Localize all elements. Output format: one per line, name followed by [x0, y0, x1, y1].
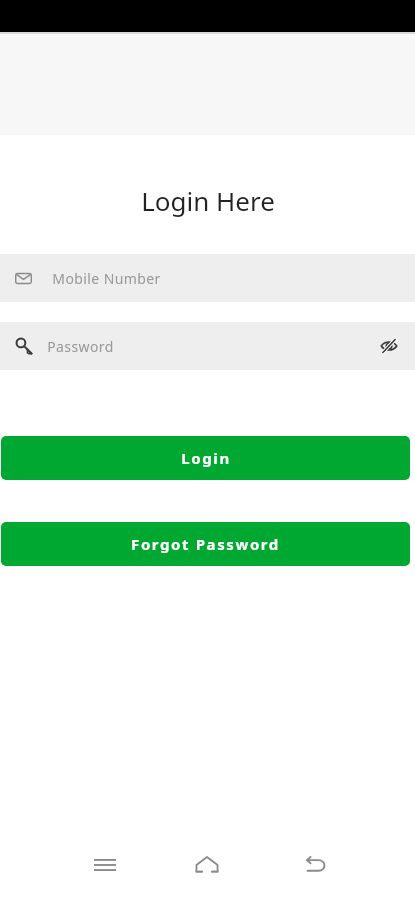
staticText: Mobile Number [52, 269, 161, 288]
button[interactable]: Back [293, 843, 337, 887]
staticText: Login Here [141, 183, 275, 218]
button[interactable]: Forgot Password [1, 522, 410, 566]
button[interactable]: Mobile Number [0, 254, 415, 302]
staticText: Forgot Password [131, 534, 280, 554]
staticText: Login [181, 448, 231, 468]
button[interactable]: Show password [377, 334, 401, 358]
button[interactable]: Password [0, 322, 415, 370]
button[interactable]: Home [185, 843, 229, 887]
staticText: Password [47, 337, 114, 356]
button[interactable]: Login [1, 436, 410, 480]
button[interactable]: Recent apps [83, 843, 127, 887]
